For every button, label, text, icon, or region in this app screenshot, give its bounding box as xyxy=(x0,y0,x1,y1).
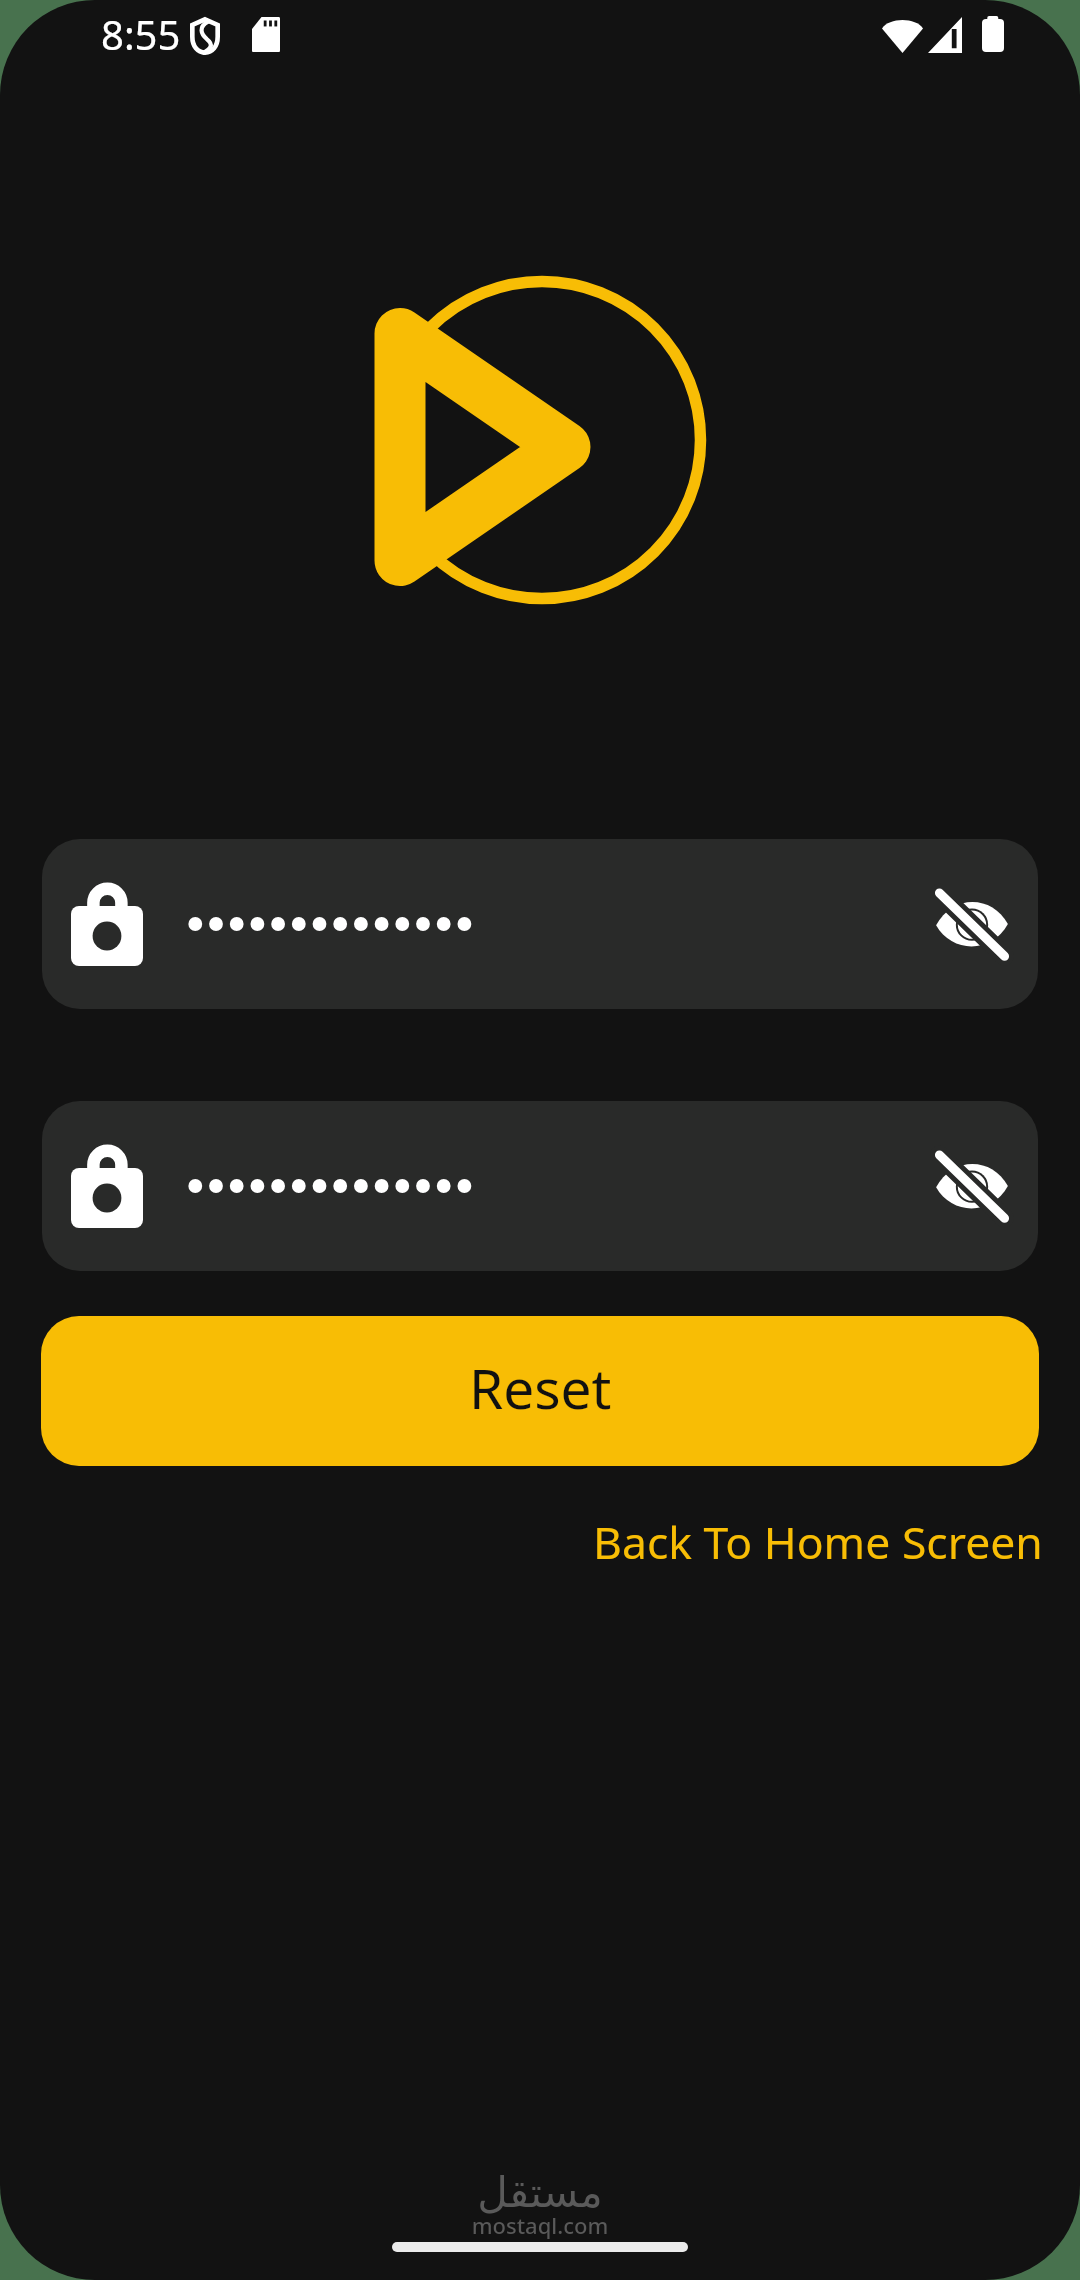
staticText: 8:55 xyxy=(101,7,181,61)
button[interactable]: Show password xyxy=(916,1130,1028,1242)
staticText: مستقل xyxy=(405,2168,675,2217)
staticText: Back To Home Screen xyxy=(593,1511,1043,1572)
button[interactable]: Reset xyxy=(41,1316,1039,1466)
button[interactable]: Back To Home Screen xyxy=(569,1501,1067,1582)
staticText: Reset xyxy=(469,1350,612,1425)
button[interactable]: Show password xyxy=(42,1101,1038,1271)
staticText: mostaql.com xyxy=(405,2210,675,2240)
button[interactable]: Show password xyxy=(916,868,1028,980)
button[interactable]: Show password xyxy=(42,839,1038,1009)
